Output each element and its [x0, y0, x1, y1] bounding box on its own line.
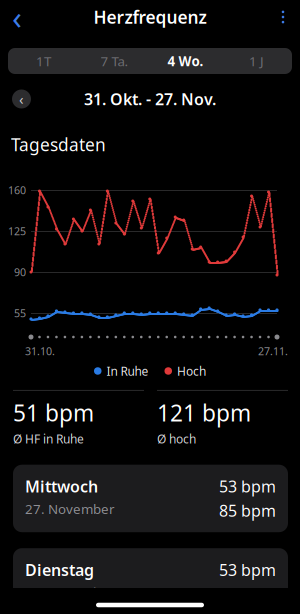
button[interactable]: 1 J — [221, 48, 292, 74]
staticText: 153 bpm — [210, 583, 276, 605]
staticText: 26. November — [25, 583, 115, 601]
staticText: Herzfrequenz — [93, 5, 206, 28]
staticText: Tagesdaten — [11, 133, 106, 156]
staticText: Hoch — [177, 363, 206, 379]
button[interactable]: Dienstag — [13, 548, 288, 614]
button[interactable]: Zurück — [0, 0, 34, 34]
button[interactable]: Mittwoch — [13, 465, 288, 532]
staticText: 125 — [8, 224, 26, 238]
staticText: 51 bpm — [13, 398, 94, 428]
staticText: In Ruhe — [106, 363, 148, 379]
staticText: 27.11. — [258, 344, 288, 358]
staticText: 27. November — [25, 500, 115, 518]
staticText: Dienstag — [25, 559, 94, 580]
staticText: Ø hoch — [157, 431, 196, 447]
button[interactable]: 4 Wo. — [150, 48, 221, 74]
staticText: 53 bpm — [219, 559, 276, 580]
button[interactable]: Weitere Optionen — [266, 0, 300, 34]
staticText: ‹ — [19, 89, 24, 109]
button[interactable]: 7 Ta. — [79, 48, 150, 74]
staticText: 55 — [14, 306, 26, 320]
button[interactable]: 1T — [8, 48, 79, 74]
staticText: 7 Ta. — [100, 52, 128, 70]
button[interactable]: Vorheriger Zeitraum — [12, 89, 31, 108]
staticText: ‹ — [12, 0, 22, 38]
staticText: Ø HF in Ruhe — [13, 431, 84, 447]
staticText: 31. Okt. - 27. Nov. — [84, 88, 216, 110]
staticText: 121 bpm — [157, 398, 251, 428]
staticText: 1 J — [249, 52, 264, 70]
staticText: 53 bpm — [219, 476, 276, 497]
staticText: 160 — [8, 183, 26, 197]
staticText: 4 Wo. — [167, 52, 203, 70]
staticText: Mittwoch — [25, 476, 98, 497]
staticText: 85 bpm — [219, 500, 276, 521]
staticText: 90 — [14, 265, 26, 279]
staticText: 31.10. — [25, 344, 55, 358]
staticText: 1T — [36, 52, 51, 70]
